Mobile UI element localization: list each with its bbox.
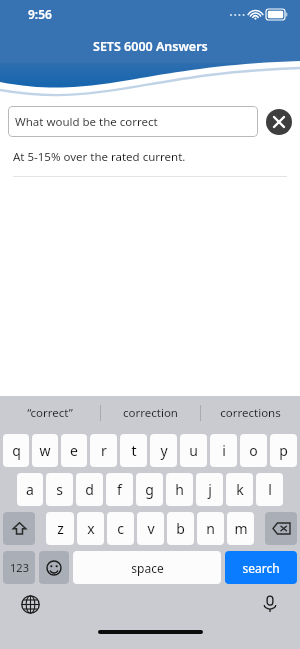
button[interactable]: b: [167, 512, 194, 545]
button[interactable]: space: [73, 551, 221, 584]
staticText: space: [131, 560, 164, 576]
staticText: y: [160, 441, 168, 460]
button[interactable]: d: [76, 473, 103, 506]
button[interactable]: e: [61, 434, 87, 467]
staticText: “correct”: [27, 405, 73, 421]
staticText: u: [189, 441, 198, 460]
button[interactable]: u: [180, 434, 207, 467]
button[interactable]: a: [17, 473, 43, 506]
button[interactable]: search: [225, 551, 297, 584]
staticText: l: [268, 480, 272, 499]
button[interactable]: Shift: [3, 512, 35, 545]
staticText: SETS 6000 Answers: [93, 38, 208, 55]
button[interactable]: l: [256, 473, 283, 506]
staticText: At 5-15% over the rated current.: [13, 149, 186, 165]
button[interactable]: 123: [3, 551, 35, 584]
staticText: h: [175, 480, 184, 499]
button[interactable]: c: [107, 512, 134, 545]
staticText: o: [249, 441, 258, 460]
staticText: a: [26, 480, 34, 499]
staticText: j: [208, 480, 212, 499]
staticText: v: [147, 519, 155, 538]
staticText: r: [101, 441, 107, 460]
button[interactable]: m: [227, 512, 254, 545]
button[interactable]: j: [196, 473, 223, 506]
button[interactable]: x: [77, 512, 104, 545]
button[interactable]: Change keyboard: [18, 592, 42, 616]
button[interactable]: y: [150, 434, 177, 467]
button[interactable]: “correct”: [0, 396, 100, 430]
button[interactable]: s: [46, 473, 73, 506]
button[interactable]: h: [166, 473, 193, 506]
staticText: f: [117, 480, 122, 499]
staticText: t: [131, 441, 137, 460]
staticText: n: [206, 519, 215, 538]
button[interactable]: Emoji: [39, 551, 69, 584]
staticText: What would be the correct: [15, 114, 158, 130]
button[interactable]: Clear search: [266, 109, 292, 135]
button[interactable]: g: [136, 473, 163, 506]
staticText: e: [70, 441, 78, 460]
staticText: x: [87, 519, 95, 538]
staticText: w: [39, 441, 51, 460]
button[interactable]: Backspace: [265, 512, 297, 545]
staticText: 9:56: [28, 6, 52, 22]
staticText: g: [145, 480, 154, 499]
button[interactable]: What would be the correct: [8, 106, 258, 137]
staticText: corrections: [220, 405, 281, 421]
button[interactable]: v: [137, 512, 164, 545]
button[interactable]: z: [46, 512, 74, 545]
button[interactable]: k: [226, 473, 253, 506]
staticText: 123: [10, 560, 29, 575]
button[interactable]: p: [270, 434, 297, 467]
staticText: d: [85, 480, 94, 499]
button[interactable]: correction: [101, 396, 200, 430]
button[interactable]: n: [197, 512, 224, 545]
staticText: search: [242, 560, 280, 576]
staticText: c: [117, 519, 124, 538]
button[interactable]: o: [240, 434, 267, 467]
staticText: p: [279, 441, 288, 460]
staticText: correction: [123, 405, 178, 421]
staticText: k: [236, 480, 244, 499]
button[interactable]: i: [210, 434, 237, 467]
button[interactable]: f: [106, 473, 133, 506]
staticText: q: [12, 441, 21, 460]
button[interactable]: t: [120, 434, 147, 467]
staticText: s: [56, 480, 63, 499]
staticText: i: [222, 441, 226, 460]
staticText: b: [176, 519, 185, 538]
button[interactable]: r: [90, 434, 117, 467]
button[interactable]: w: [32, 434, 58, 467]
button[interactable]: corrections: [201, 396, 300, 430]
button[interactable]: Dictation: [258, 592, 282, 616]
staticText: m: [234, 519, 248, 538]
button[interactable]: q: [3, 434, 29, 467]
staticText: z: [57, 519, 64, 538]
